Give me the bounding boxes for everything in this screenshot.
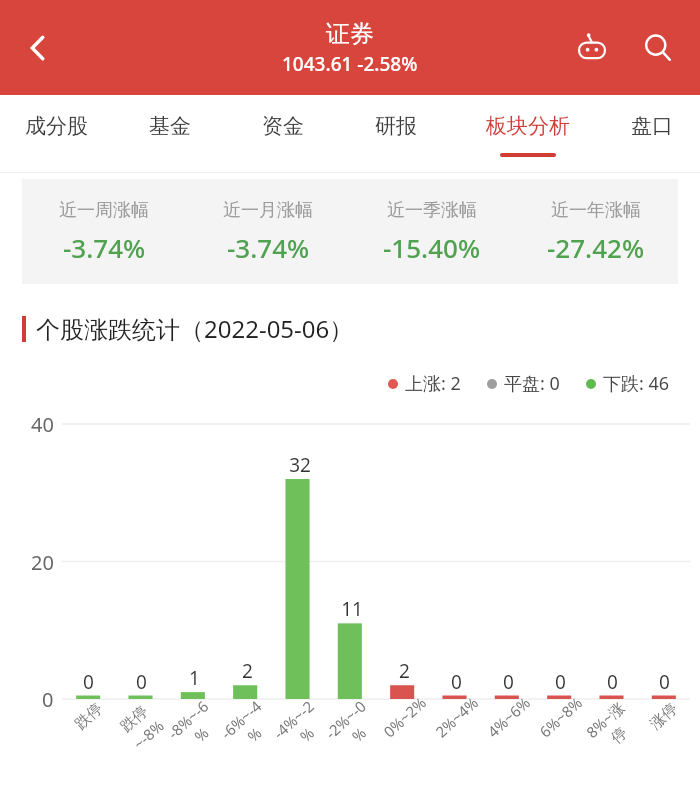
button[interactable]: 板块分析 (452, 95, 604, 173)
button[interactable]: 基金 (113, 95, 226, 173)
staticText: 近一周涨幅 (59, 199, 149, 222)
staticText: -27.42% (547, 230, 645, 265)
button[interactable]: AI assistant (566, 22, 618, 74)
staticText: -3.74% (63, 230, 146, 265)
staticText: -2%~-0% (319, 695, 385, 759)
staticText: -3.74% (227, 230, 310, 265)
staticText: 平盘: 0 (504, 371, 560, 396)
staticText: 个股涨跌统计（2022-05-06） (36, 312, 354, 345)
staticText: 0 (451, 669, 462, 695)
staticText: 证券 (326, 19, 374, 49)
staticText: 跌停 (71, 699, 106, 734)
staticText: 跌停~-8% (108, 694, 175, 760)
staticText: 2%~4% (431, 692, 482, 741)
staticText: -6%~-4% (214, 694, 281, 760)
button[interactable]: 成分股 (0, 95, 113, 173)
staticText: 8%~涨停 (579, 695, 645, 760)
staticText: 11 (341, 596, 363, 622)
staticText: 0 (659, 669, 670, 695)
staticText: 2 (399, 658, 410, 684)
staticText: 近一季涨幅 (387, 199, 477, 222)
staticText: 成分股 (25, 113, 88, 139)
staticText: -15.40% (383, 230, 481, 265)
staticText: 近一月涨幅 (223, 199, 313, 222)
staticText: 32 (289, 452, 311, 478)
staticText: 盘口 (631, 113, 673, 139)
button[interactable]: Back (8, 18, 68, 78)
staticText: 0 (42, 686, 54, 713)
staticText: 涨停 (646, 699, 681, 734)
staticText: 0 (83, 669, 94, 695)
staticText: -8%~-6% (161, 694, 228, 760)
staticText: 0%~2% (379, 692, 430, 741)
staticText: 板块分析 (486, 113, 570, 139)
staticText: 近一年涨幅 (551, 199, 641, 222)
staticText: 2 (242, 658, 253, 684)
staticText: 上涨: 2 (405, 371, 461, 396)
staticText: 资金 (262, 113, 304, 139)
staticText: 下跌: 46 (603, 371, 670, 396)
staticText: 1 (189, 665, 200, 691)
staticText: 研报 (375, 113, 417, 139)
staticText: 6%~8% (535, 692, 586, 741)
staticText: 0 (503, 669, 514, 695)
staticText: -4%~-2% (267, 695, 333, 759)
staticText: 0 (607, 669, 618, 695)
staticText: 基金 (149, 113, 191, 139)
staticText: 4%~6% (483, 692, 534, 741)
staticText: 0 (136, 669, 147, 695)
button[interactable]: 盘口 (604, 95, 700, 173)
button[interactable]: 资金 (226, 95, 339, 173)
button[interactable]: Search (632, 22, 684, 74)
button[interactable]: 研报 (339, 95, 452, 173)
staticText: 20 (31, 549, 54, 576)
staticText: 1043.61 -2.58% (282, 51, 418, 77)
staticText: 0 (555, 669, 566, 695)
staticText: 40 (31, 411, 54, 438)
